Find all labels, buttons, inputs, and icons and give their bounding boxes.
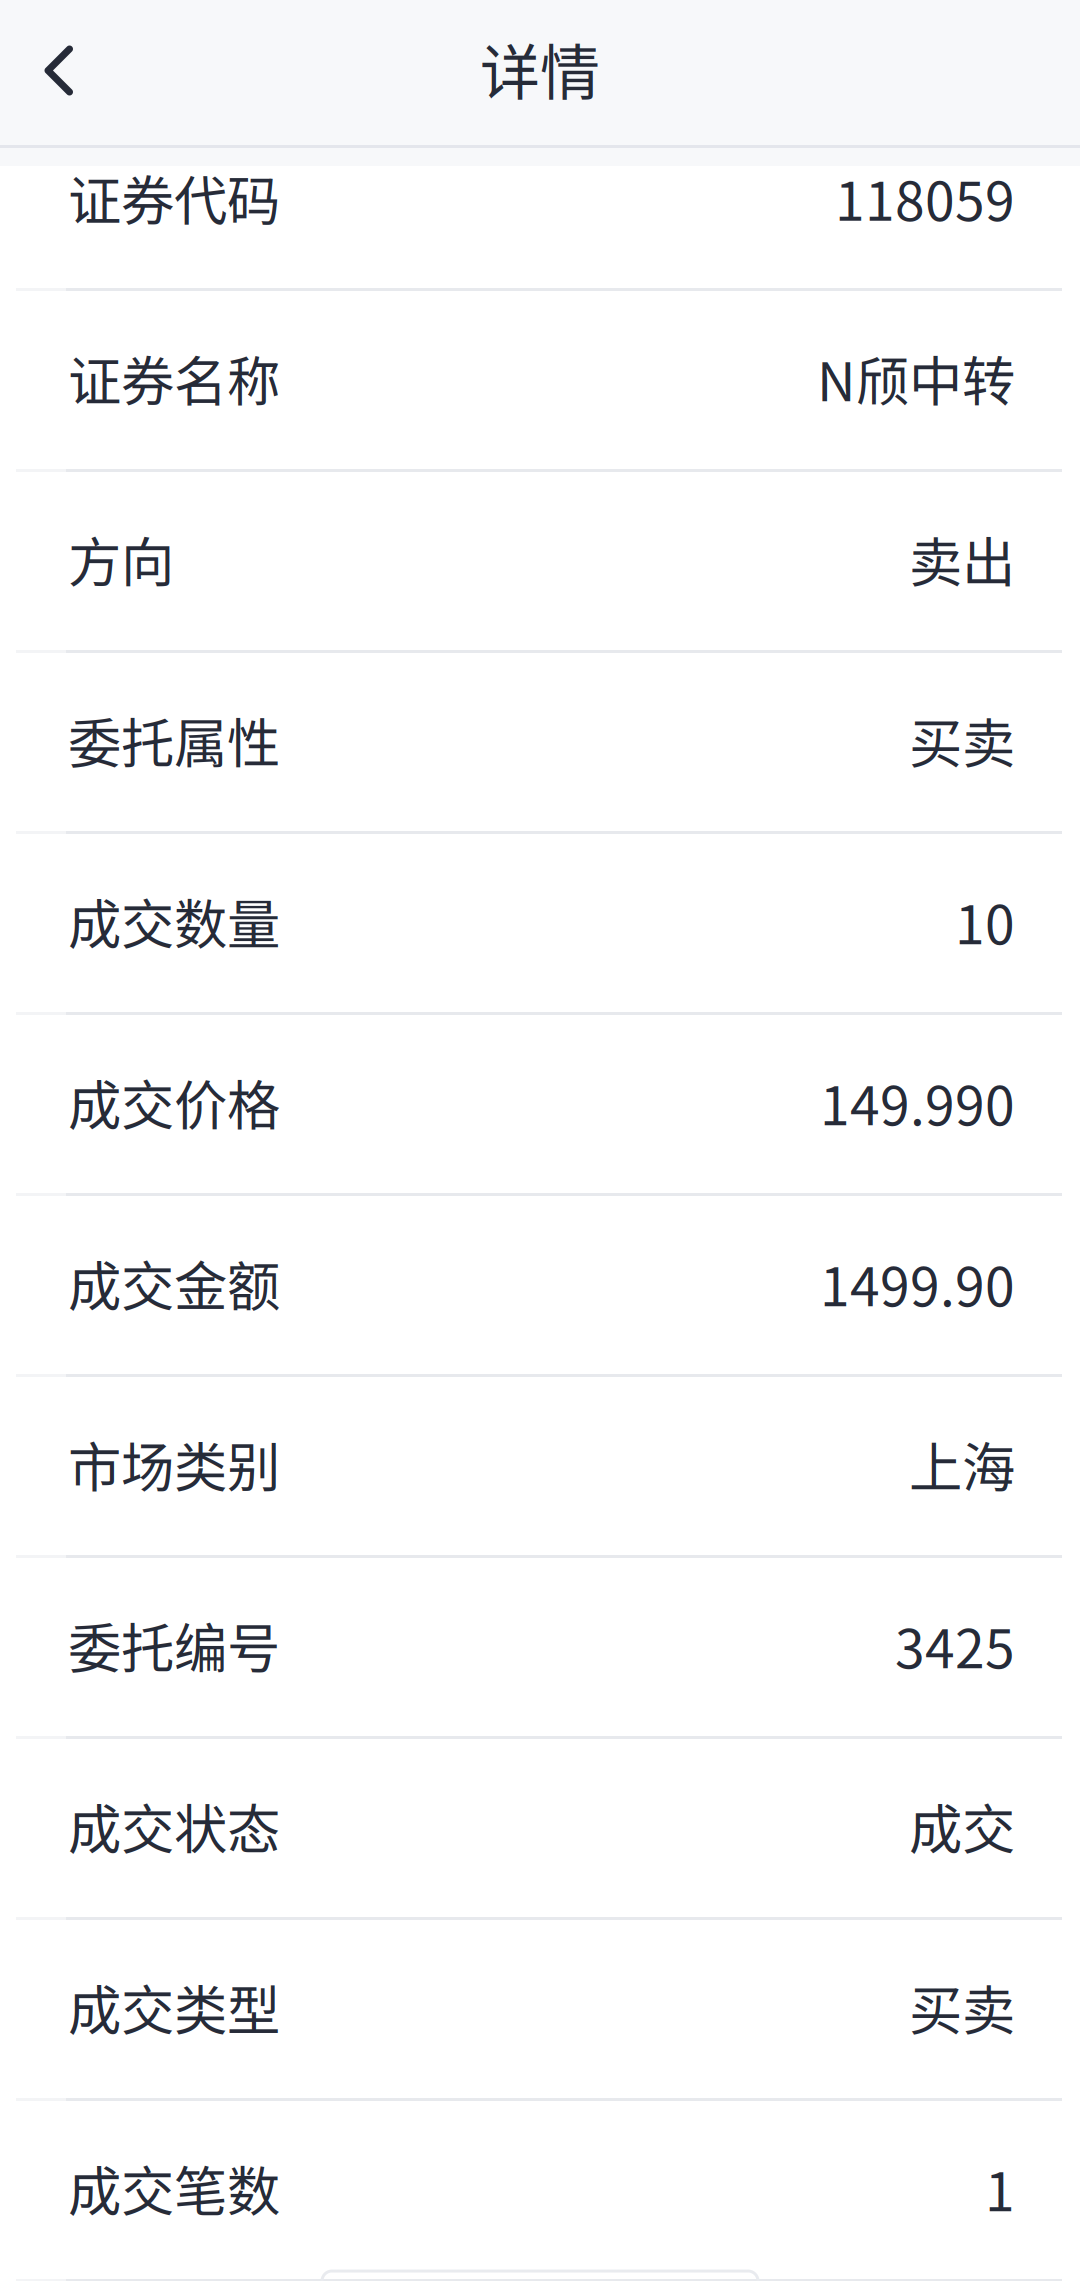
staticText: 10 bbox=[955, 882, 1015, 960]
staticText: 市场类别 bbox=[68, 1425, 280, 1503]
staticText: 方向 bbox=[68, 520, 174, 598]
staticText: 成交价格 bbox=[68, 1063, 280, 1141]
staticText: 149.990 bbox=[820, 1063, 1015, 1141]
staticText: 详情 bbox=[480, 25, 600, 112]
staticText: 上海 bbox=[909, 1425, 1015, 1503]
staticText: 委托属性 bbox=[68, 701, 280, 779]
staticText: 成交金额 bbox=[68, 1244, 280, 1322]
staticText: 118059 bbox=[835, 159, 1015, 236]
staticText: 成交 bbox=[909, 1787, 1015, 1865]
button[interactable]: 返回 bbox=[0, 0, 117, 145]
staticText: 成交类型 bbox=[68, 1968, 280, 2046]
staticText: 成交笔数 bbox=[68, 2149, 280, 2227]
staticText: 1 bbox=[985, 2149, 1015, 2227]
staticText: 1499.90 bbox=[820, 1244, 1015, 1322]
button[interactable]: 操作 bbox=[322, 2271, 758, 2281]
staticText: 证券代码 bbox=[68, 159, 280, 236]
staticText: 3425 bbox=[895, 1606, 1015, 1684]
staticText: 买卖 bbox=[909, 1968, 1015, 2046]
staticText: 成交数量 bbox=[68, 882, 280, 960]
staticText: 委托编号 bbox=[68, 1606, 280, 1684]
staticText: 卖出 bbox=[909, 520, 1015, 598]
staticText: 买卖 bbox=[909, 701, 1015, 779]
staticText: 证券名称 bbox=[68, 339, 280, 417]
staticText: N颀中转 bbox=[817, 339, 1015, 417]
staticText: 成交状态 bbox=[68, 1787, 280, 1865]
